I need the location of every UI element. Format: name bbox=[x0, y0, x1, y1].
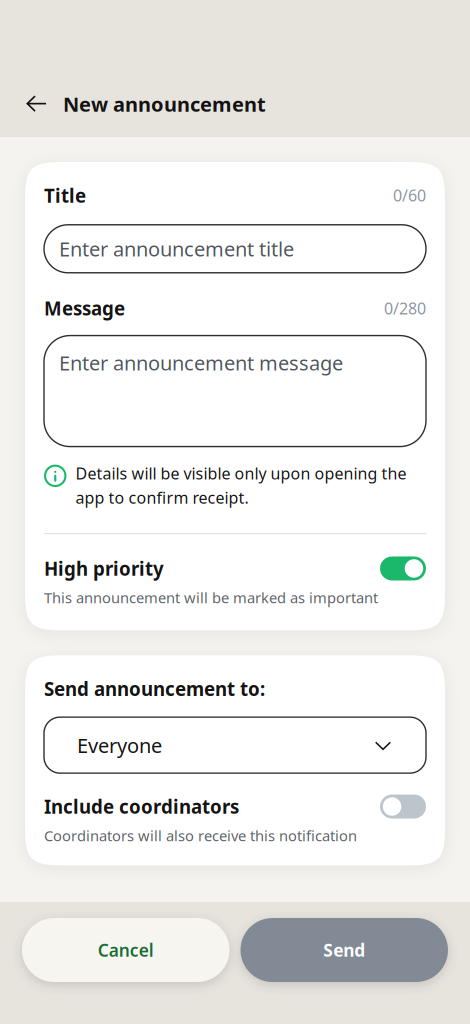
staticText: Cancel bbox=[98, 938, 154, 961]
button[interactable]: Enter announcement message bbox=[44, 336, 426, 447]
button[interactable]: Include coordinators bbox=[380, 794, 426, 818]
staticText: This announcement will be marked as impo… bbox=[44, 588, 378, 607]
staticText: Everyone bbox=[77, 732, 162, 758]
button[interactable]: Cancel bbox=[22, 918, 229, 982]
staticText: Message bbox=[44, 296, 125, 321]
button[interactable]: Back bbox=[9, 84, 63, 124]
staticText: Enter announcement title bbox=[59, 235, 294, 262]
button[interactable]: Send bbox=[240, 918, 448, 982]
staticText: Coordinators will also receive this noti… bbox=[44, 826, 357, 845]
staticText: Enter announcement message bbox=[59, 350, 343, 376]
staticText: 0/280 bbox=[384, 298, 426, 319]
staticText: Details will be visible only upon openin… bbox=[75, 463, 406, 508]
staticText: Send bbox=[323, 938, 365, 961]
staticText: High priority bbox=[44, 556, 164, 581]
staticText: 0/60 bbox=[393, 185, 426, 206]
staticText: Send announcement to: bbox=[44, 676, 265, 701]
button[interactable]: Everyone bbox=[44, 717, 426, 773]
staticText: Include coordinators bbox=[44, 794, 239, 819]
button[interactable]: Enter announcement title bbox=[44, 225, 426, 273]
staticText: Title bbox=[44, 183, 86, 208]
button[interactable]: High priority bbox=[380, 556, 426, 580]
staticText: New announcement bbox=[63, 91, 266, 117]
